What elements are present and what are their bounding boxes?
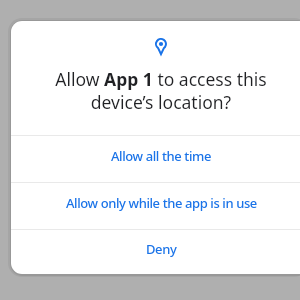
staticText: Allow App 1 to access this device’s loca… (55, 67, 267, 115)
staticText: Deny (146, 240, 177, 258)
staticText: Allow only while the app is in use (66, 194, 257, 212)
button[interactable]: Allow only while the app is in use (11, 183, 300, 229)
button[interactable]: Allow all the time (11, 136, 300, 182)
staticText: Allow all the time (111, 147, 211, 165)
button[interactable]: Deny (11, 230, 300, 274)
